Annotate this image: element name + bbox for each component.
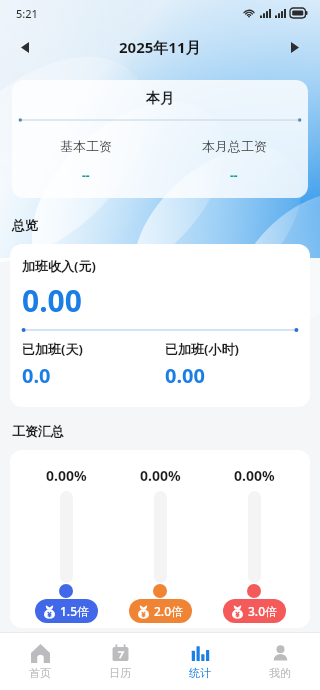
button[interactable]: 统计 (160, 633, 240, 690)
button[interactable]: 2.0倍 (129, 599, 192, 623)
button[interactable]: 本月 (12, 80, 308, 198)
staticText: 0.0 (22, 362, 51, 389)
button[interactable]: 我的 (240, 633, 320, 690)
staticText: 2025年11月 (119, 37, 201, 57)
staticText: 0.00% (46, 466, 87, 485)
staticText: 0.00 (165, 362, 205, 389)
staticText: 工资汇总 (12, 423, 64, 439)
staticText: 本月 (146, 90, 174, 108)
staticText: -- (82, 167, 90, 183)
button[interactable]: Previous month (10, 32, 40, 62)
button[interactable]: 加班收入(元) (10, 244, 310, 407)
staticText: 统计 (189, 666, 211, 680)
staticText: 0.00 (22, 280, 82, 321)
staticText: 日历 (109, 666, 131, 680)
staticText: 加班收入(元) (22, 257, 96, 275)
staticText: 已加班(天) (22, 340, 83, 358)
staticText: 基本工资 (60, 138, 112, 154)
staticText: 本月总工资 (202, 138, 267, 154)
staticText: 已加班(小时) (165, 340, 239, 358)
staticText: 0.00% (234, 466, 275, 485)
staticText: 我的 (269, 666, 291, 680)
button[interactable]: 3.0倍 (223, 599, 286, 623)
staticText: 0.00% (140, 466, 181, 485)
staticText: 5:21 (16, 6, 38, 21)
staticText: -- (230, 167, 238, 183)
staticText: 总览 (12, 217, 38, 233)
staticText: 2.0倍 (154, 603, 183, 619)
button[interactable]: 日历 (80, 633, 160, 690)
button[interactable]: Next month (280, 32, 310, 62)
button[interactable]: 1.5倍 (35, 599, 98, 623)
staticText: 1.5倍 (60, 603, 89, 619)
staticText: 首页 (29, 666, 51, 680)
staticText: 3.0倍 (248, 603, 277, 619)
button[interactable]: 首页 (0, 633, 80, 690)
